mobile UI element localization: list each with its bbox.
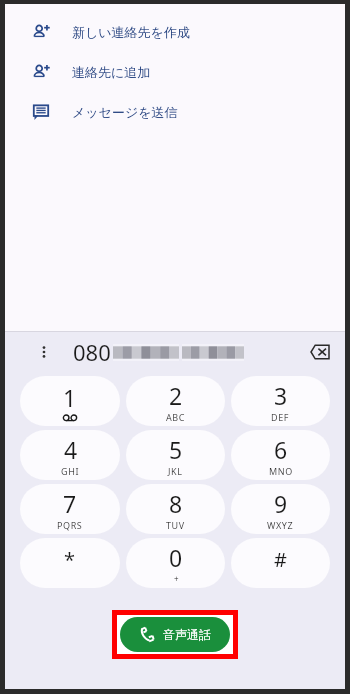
staticText: 2 xyxy=(169,380,183,411)
staticText: PQRS xyxy=(57,519,83,531)
button[interactable]: 4 xyxy=(20,430,120,480)
button[interactable]: 連絡先に追加 xyxy=(5,56,345,88)
staticText: 3 xyxy=(274,380,288,411)
staticText: 8 xyxy=(169,488,183,519)
staticText: 0 xyxy=(169,542,183,573)
staticText: 新しい連絡先を作成 xyxy=(72,24,190,40)
button[interactable]: 1 xyxy=(20,376,120,426)
button[interactable]: 新しい連絡先を作成 xyxy=(5,16,345,48)
staticText: 080 xyxy=(73,337,111,367)
staticText: TUV xyxy=(166,519,185,531)
button[interactable]: メッセージを送信 xyxy=(5,96,345,128)
staticText: 6 xyxy=(274,434,288,465)
button[interactable]: 2 xyxy=(126,376,225,426)
staticText: 4 xyxy=(64,434,78,465)
button[interactable]: 7 xyxy=(20,484,120,534)
staticText: DEF xyxy=(271,411,290,423)
staticText: 音声通話 xyxy=(163,627,211,642)
button[interactable]: # xyxy=(231,538,330,588)
button[interactable]: 6 xyxy=(231,430,330,480)
button[interactable]: 8 xyxy=(126,484,225,534)
button[interactable]: Backspace xyxy=(305,337,335,367)
button[interactable]: 音声通話 xyxy=(120,617,230,652)
staticText: 7 xyxy=(63,488,77,519)
button[interactable]: 5 xyxy=(126,430,225,480)
button[interactable]: 9 xyxy=(231,484,330,534)
staticText: WXYZ xyxy=(267,519,294,531)
staticText: * xyxy=(64,546,76,573)
button[interactable]: More options xyxy=(31,339,57,365)
staticText: GHI xyxy=(61,465,80,477)
staticText: 9 xyxy=(274,488,288,519)
staticText: ABC xyxy=(166,411,186,423)
staticText: + xyxy=(174,573,179,584)
staticText: 1 xyxy=(63,382,77,413)
staticText: JKL xyxy=(168,465,183,477)
staticText: 5 xyxy=(169,434,183,465)
staticText: MNO xyxy=(269,465,293,477)
button[interactable]: 3 xyxy=(231,376,330,426)
button[interactable]: * xyxy=(20,538,120,588)
staticText: 連絡先に追加 xyxy=(72,64,151,80)
staticText: メッセージを送信 xyxy=(72,104,178,120)
button[interactable]: 0 xyxy=(126,538,225,588)
staticText: # xyxy=(274,546,287,573)
